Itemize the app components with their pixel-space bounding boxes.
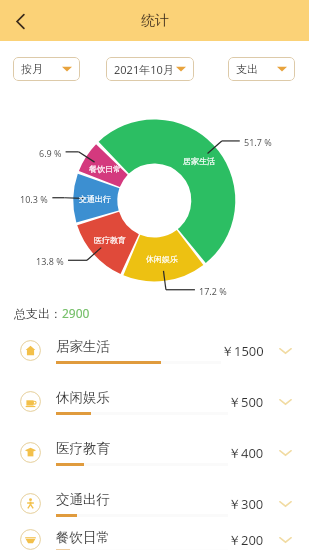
- staticText: 10.3 %: [20, 193, 48, 205]
- button[interactable]: 休闲娱乐: [0, 376, 309, 427]
- staticText: 医疗教育: [94, 235, 126, 245]
- button[interactable]: 按月: [13, 57, 80, 81]
- staticText: ￥400: [228, 444, 264, 462]
- staticText: 休闲娱乐: [56, 389, 110, 406]
- staticText: 餐饮日常: [56, 529, 110, 546]
- staticText: 交通出行: [56, 491, 110, 508]
- staticText: 交通出行: [79, 194, 111, 204]
- button[interactable]: 交通出行: [0, 478, 309, 529]
- staticText: 51.7 %: [244, 136, 272, 148]
- staticText: 居家生活: [183, 156, 215, 166]
- staticText: ￥200: [228, 531, 264, 549]
- button[interactable]: 餐饮日常: [0, 529, 309, 550]
- button[interactable]: Expand: [278, 532, 293, 547]
- staticText: 统计: [141, 12, 169, 30]
- button[interactable]: 医疗教育: [0, 427, 309, 478]
- staticText: 休闲娱乐: [146, 254, 178, 264]
- button[interactable]: Expand: [278, 445, 293, 460]
- staticText: 支出: [236, 62, 258, 76]
- staticText: 餐饮日常: [89, 164, 121, 174]
- button[interactable]: Expand: [278, 343, 293, 358]
- button[interactable]: 居家生活: [0, 325, 309, 376]
- staticText: 2900: [62, 305, 90, 321]
- staticText: 6.9 %: [39, 147, 62, 159]
- staticText: 居家生活: [56, 338, 110, 355]
- staticText: 13.8 %: [36, 255, 64, 267]
- staticText: ￥500: [228, 393, 264, 411]
- staticText: 按月: [21, 62, 43, 76]
- staticText: 2021年10月: [114, 62, 174, 77]
- button[interactable]: Expand: [278, 394, 293, 409]
- staticText: 总支出：: [14, 306, 62, 321]
- button[interactable]: 支出: [228, 57, 295, 81]
- button[interactable]: 2021年10月: [106, 57, 194, 81]
- button[interactable]: Back: [0, 1, 40, 41]
- staticText: 17.2 %: [199, 285, 227, 297]
- staticText: ￥300: [228, 495, 264, 513]
- staticText: 医疗教育: [56, 440, 110, 457]
- staticText: ￥1500: [221, 342, 264, 360]
- button[interactable]: Expand: [278, 496, 293, 511]
